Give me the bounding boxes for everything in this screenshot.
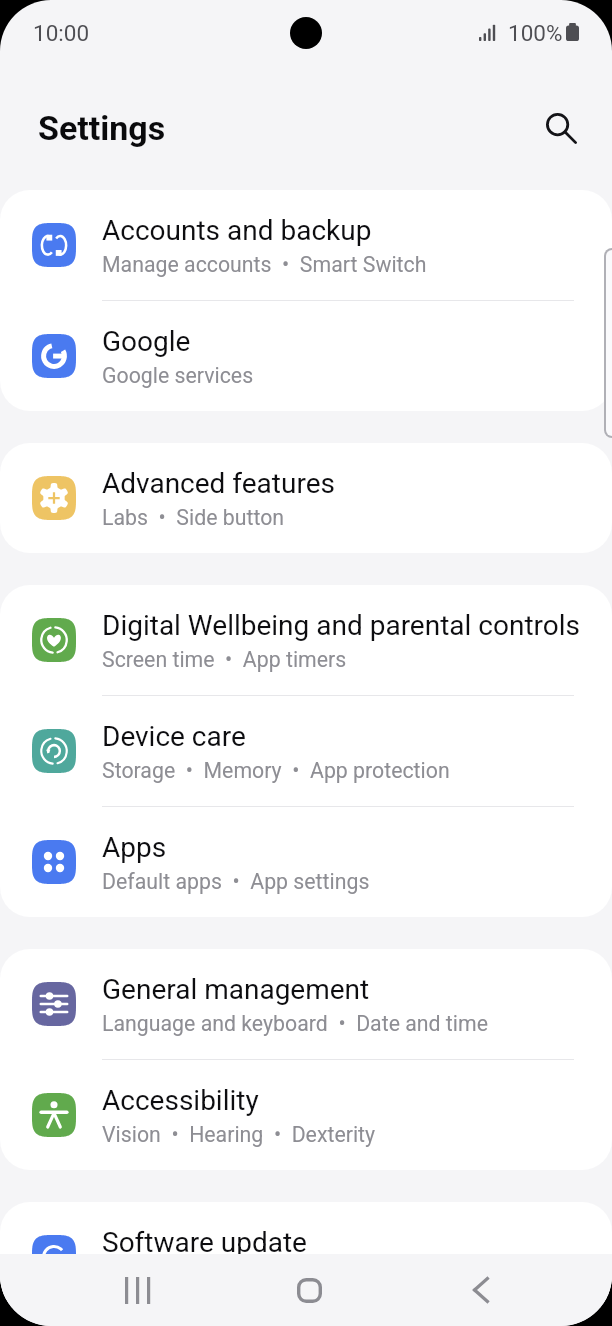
staticText: Screen time • App timers	[102, 647, 347, 672]
staticText: General management	[102, 973, 370, 1006]
staticText: Device care	[102, 720, 246, 753]
button[interactable]: Recents	[102, 1254, 174, 1326]
button[interactable]: Search	[532, 99, 590, 157]
staticText: Storage • Memory • App protection	[102, 758, 450, 783]
button[interactable]: Home	[273, 1254, 345, 1326]
staticText: Settings	[38, 108, 166, 148]
button[interactable]: Accounts and backup	[0, 190, 612, 300]
button[interactable]: Apps	[0, 807, 612, 917]
staticText: Apps	[102, 831, 167, 864]
button[interactable]: Digital Wellbeing and parental controls	[0, 585, 612, 695]
staticText: Google	[102, 325, 191, 358]
button[interactable]: Accessibility	[0, 1060, 612, 1170]
button[interactable]: General management	[0, 949, 612, 1059]
button[interactable]: Software update	[0, 1202, 612, 1312]
staticText: 10:00	[33, 20, 90, 46]
staticText: Google services	[102, 363, 254, 388]
button[interactable]: Device care	[0, 696, 612, 806]
staticText: Software update	[102, 1226, 307, 1259]
staticText: Language and keyboard • Date and time	[102, 1011, 488, 1036]
staticText: Download and install	[102, 1264, 300, 1289]
staticText: Default apps • App settings	[102, 869, 370, 894]
button[interactable]: Google	[0, 301, 612, 411]
staticText: Accounts and backup	[102, 214, 372, 247]
staticText: 100%	[508, 20, 563, 46]
staticText: Advanced features	[102, 467, 335, 500]
staticText: Accessibility	[102, 1084, 259, 1117]
button[interactable]: Advanced features	[0, 443, 612, 553]
staticText: Manage accounts • Smart Switch	[102, 252, 427, 277]
staticText: Labs • Side button	[102, 505, 285, 530]
staticText: Vision • Hearing • Dexterity	[102, 1122, 376, 1147]
staticText: Digital Wellbeing and parental controls	[102, 609, 581, 642]
button[interactable]: Back	[445, 1254, 517, 1326]
